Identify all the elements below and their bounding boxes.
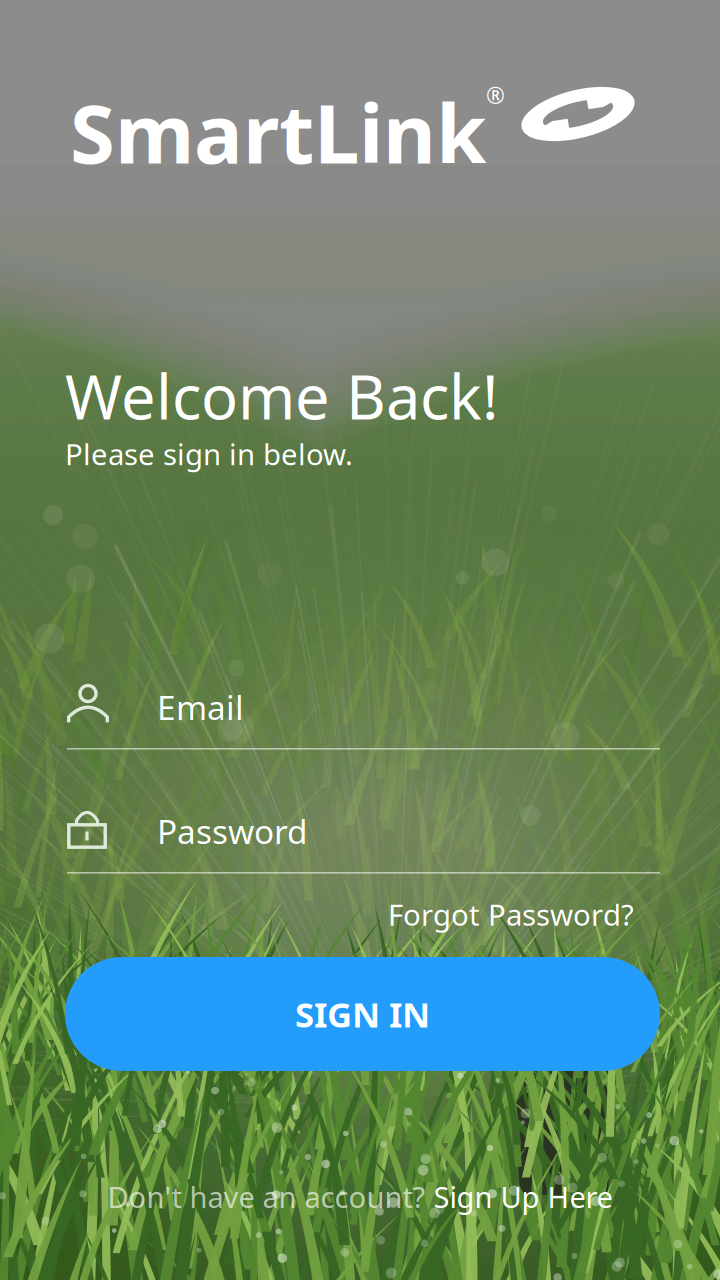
staticText: Sign Up Here bbox=[433, 1177, 612, 1217]
button[interactable]: Password bbox=[67, 808, 660, 874]
staticText: Email bbox=[157, 685, 244, 729]
staticText: SIGN IN bbox=[295, 991, 430, 1037]
staticText: SmartLink bbox=[70, 78, 486, 186]
button[interactable]: Email bbox=[67, 684, 660, 750]
staticText: Password bbox=[157, 809, 308, 853]
staticText: Forgot Password? bbox=[388, 895, 634, 934]
staticText: Welcome Back! bbox=[65, 355, 498, 436]
button[interactable]: SIGN IN bbox=[65, 957, 660, 1071]
staticText: ® bbox=[486, 80, 505, 110]
staticText: Don't have an account? bbox=[107, 1177, 433, 1217]
button[interactable]: Forgot Password? bbox=[388, 895, 634, 934]
button[interactable]: Sign Up Here bbox=[433, 1177, 612, 1217]
staticText: Please sign in below. bbox=[65, 434, 353, 473]
